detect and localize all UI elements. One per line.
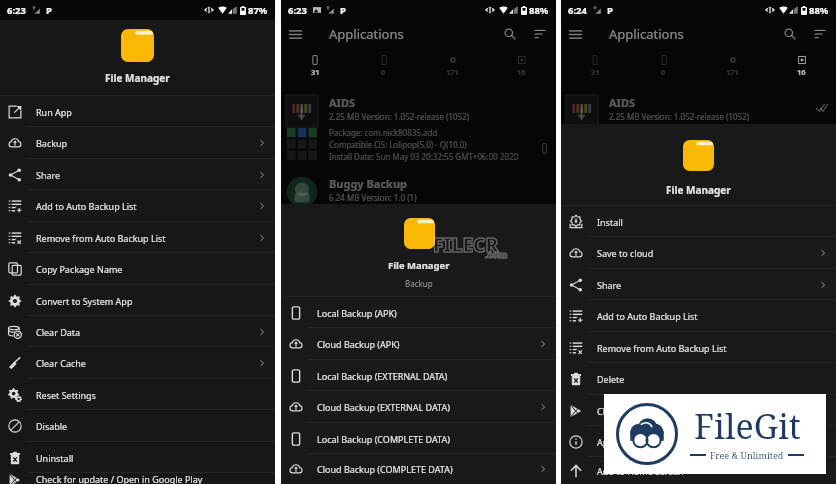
button[interactable]: Reset Settings [0, 379, 275, 410]
button[interactable]: AIDS [286, 95, 548, 163]
button[interactable]: Install [561, 206, 836, 237]
button[interactable]: Menu [561, 20, 836, 48]
staticText: FileGit [694, 403, 801, 449]
staticText: Remove from Auto Backup List [597, 342, 727, 354]
button[interactable]: Check for update / Open in Google Play [0, 473, 275, 484]
staticText: Backup [36, 137, 68, 149]
button[interactable]: Search [497, 21, 523, 47]
staticText: Copy Package Name [36, 263, 123, 275]
button[interactable]: Convert to System App [0, 285, 275, 316]
button[interactable]: Add to Auto Backup List [561, 300, 836, 332]
staticText: Applications [329, 25, 404, 43]
staticText: Uninstall [36, 452, 74, 464]
staticText: 6:24 [568, 4, 587, 17]
button[interactable]: 171 [418, 48, 487, 84]
staticText: 171 [726, 67, 739, 77]
staticText: Convert to System App [36, 295, 133, 307]
button[interactable]: Backup [0, 127, 275, 159]
button[interactable]: 0 [349, 48, 418, 84]
staticText: 31 [311, 67, 320, 77]
button[interactable]: Search [777, 21, 803, 47]
button[interactable]: Disable [0, 410, 275, 442]
staticText: Clear Data [36, 326, 81, 338]
button[interactable]: Sort [807, 21, 833, 47]
staticText: Buggy Backup [329, 176, 408, 191]
button[interactable]: App Details [561, 426, 836, 457]
button[interactable]: Share [0, 159, 275, 190]
button[interactable]: Menu [281, 20, 309, 48]
staticText: Add to Home Screen [597, 465, 684, 477]
button[interactable]: Run App [0, 96, 275, 127]
button[interactable]: 16 [487, 48, 556, 84]
staticText: Reset Settings [36, 389, 96, 401]
button[interactable]: Local Backup (APK) [281, 297, 556, 328]
staticText: Disable [36, 420, 68, 432]
button[interactable]: 0 [629, 48, 698, 84]
button[interactable]: Cloud Backup (COMPLETE DATA) [281, 454, 556, 484]
staticText: Local Backup (APK) [317, 307, 397, 319]
staticText: P [607, 4, 613, 17]
button[interactable]: Local Backup (COMPLETE DATA) [281, 423, 556, 454]
staticText: File Manager [105, 71, 170, 85]
staticText: Clear Cache [36, 357, 86, 369]
staticText: Share [36, 169, 61, 181]
button[interactable]: Save to cloud [561, 237, 836, 269]
staticText: AIDS [329, 95, 356, 110]
staticText: Install [597, 216, 623, 228]
button[interactable]: 31 [281, 48, 349, 84]
staticText: File Manager [666, 183, 731, 197]
staticText: Local Backup (COMPLETE DATA) [317, 433, 450, 445]
button[interactable]: Copy Package Name [0, 253, 275, 285]
staticText: 2.25 MB Version: 1.052-release (1052) [609, 111, 750, 122]
staticText: Applications [609, 25, 684, 43]
staticText: 6.24 MB Version: 1.0 (1) [329, 192, 417, 203]
staticText: 0 [381, 67, 386, 77]
staticText: Check for update / Open in Google Play [36, 473, 203, 484]
button[interactable]: 16 [767, 48, 836, 84]
staticText: Save to cloud [597, 247, 654, 259]
staticText: Package: com.nick80835.add [329, 127, 438, 138]
staticText: Compatible OS: Lolipop(5.0) - Q(10.0) [329, 139, 467, 150]
staticText: Add to Auto Backup List [36, 200, 137, 212]
staticText: Share [597, 279, 622, 291]
button[interactable]: Local Backup (EXTERNAL DATA) [281, 360, 556, 391]
button[interactable]: Sort [527, 21, 553, 47]
staticText: File Manager [388, 259, 450, 272]
button[interactable]: Check for update / Open in Google Play [561, 395, 836, 426]
staticText: P [340, 4, 346, 17]
button[interactable]: Clear Data [0, 316, 275, 347]
button[interactable]: Remove from Auto Backup List [561, 332, 836, 363]
staticText: Free & Unlimited [710, 449, 784, 461]
button[interactable]: Cloud Backup (EXTERNAL DATA) [281, 391, 556, 423]
button[interactable]: Clear Cache [0, 347, 275, 379]
staticText: 88% [529, 4, 549, 17]
staticText: Backup [405, 278, 433, 289]
button[interactable]: Add to Auto Backup List [0, 190, 275, 222]
button[interactable]: 31 [561, 48, 629, 84]
staticText: 6:23 [288, 4, 307, 17]
staticText: 31 [591, 67, 600, 77]
staticText: App Details [597, 436, 646, 448]
button[interactable]: Share [561, 269, 836, 300]
button[interactable]: Buggy Backup [286, 176, 548, 208]
staticText: Run App [36, 106, 72, 118]
button[interactable]: Add to Home Screen [561, 457, 836, 484]
staticText: P [46, 4, 52, 17]
staticText: .com [485, 248, 508, 260]
button[interactable]: AIDS [566, 95, 828, 127]
staticText: 6:23 [7, 4, 26, 17]
button[interactable]: Delete [561, 363, 836, 395]
button[interactable]: Menu [561, 20, 589, 48]
staticText: 16 [517, 67, 526, 77]
staticText: 2.25 MB Version: 1.052-release (1052) [329, 111, 470, 122]
staticText: 0 [661, 67, 666, 77]
button[interactable]: Uninstall [0, 442, 275, 473]
staticText: 87% [248, 4, 268, 17]
button[interactable]: 171 [698, 48, 767, 84]
button[interactable]: Menu [281, 20, 556, 48]
staticText: Install Date: Sun May 03 20:32:55 GMT+06… [329, 151, 519, 162]
button[interactable]: Cloud Backup (APK) [281, 328, 556, 360]
staticText: Remove from Auto Backup List [36, 232, 166, 244]
button[interactable]: Remove from Auto Backup List [0, 222, 275, 253]
staticText: Add to Auto Backup List [597, 310, 698, 322]
